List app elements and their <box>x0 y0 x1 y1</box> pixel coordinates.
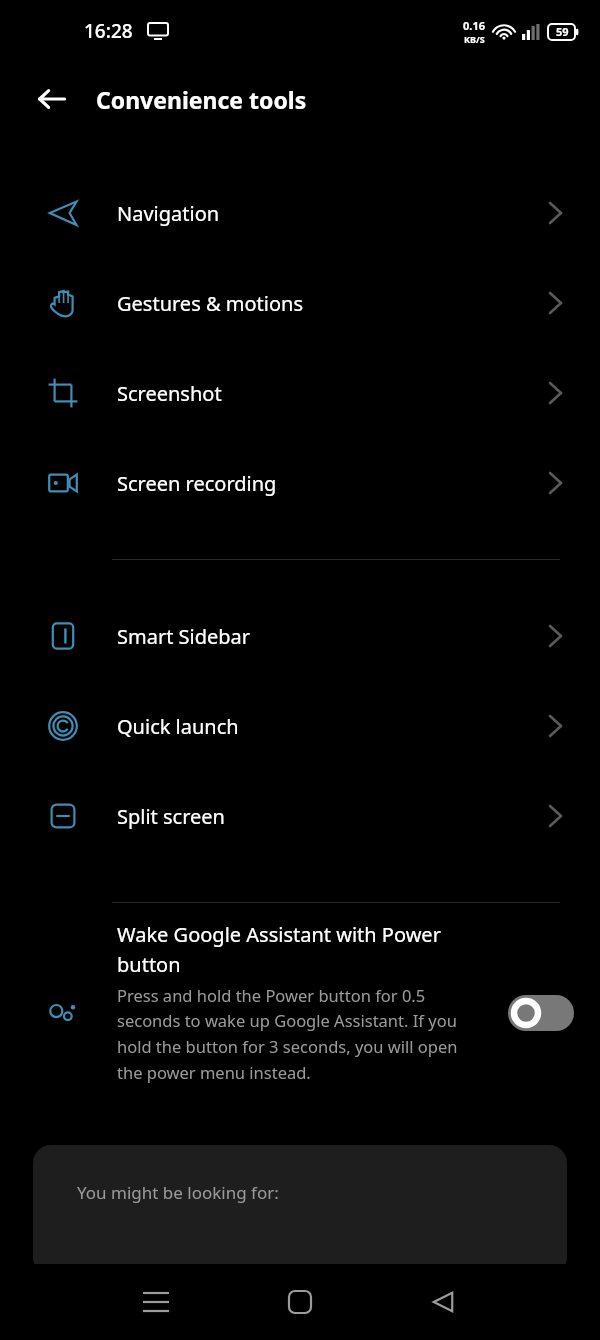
button[interactable]: You might be looking for: <box>33 1145 567 1275</box>
button[interactable]: Back <box>26 73 78 125</box>
button[interactable]: Split screen <box>0 771 600 861</box>
button[interactable]: Back <box>413 1272 473 1332</box>
button[interactable]: Gestures & motions <box>0 258 600 348</box>
button[interactable]: Toggle <box>508 995 574 1031</box>
button[interactable]: Recents <box>126 1272 186 1332</box>
button[interactable]: Screenshot <box>0 348 600 438</box>
staticText: Screenshot <box>117 380 222 407</box>
staticText: 59 <box>556 24 569 39</box>
staticText: Wake Google Assistant with Power button <box>117 921 470 978</box>
button[interactable]: Screen recording <box>0 438 600 528</box>
staticText: 16:28 <box>84 18 133 44</box>
staticText: KB/S <box>464 33 485 45</box>
staticText: Smart Sidebar <box>117 623 251 650</box>
staticText: Gestures & motions <box>117 290 303 317</box>
button[interactable]: Quick launch <box>0 681 600 771</box>
staticText: Screen recording <box>117 470 277 497</box>
staticText: Quick launch <box>117 713 239 740</box>
button[interactable]: Smart Sidebar <box>0 591 600 681</box>
button[interactable]: Navigation <box>0 168 600 258</box>
staticText: Convenience tools <box>96 84 307 115</box>
staticText: You might be looking for: <box>77 1181 279 1204</box>
button[interactable]: Home <box>270 1272 330 1332</box>
button[interactable]: Wake Google Assistant with Power button <box>0 903 600 1123</box>
staticText: 0.16 <box>463 18 485 33</box>
staticText: Navigation <box>117 200 220 227</box>
staticText: Split screen <box>117 803 225 830</box>
staticText: Press and hold the Power button for 0.5 … <box>117 984 470 1084</box>
